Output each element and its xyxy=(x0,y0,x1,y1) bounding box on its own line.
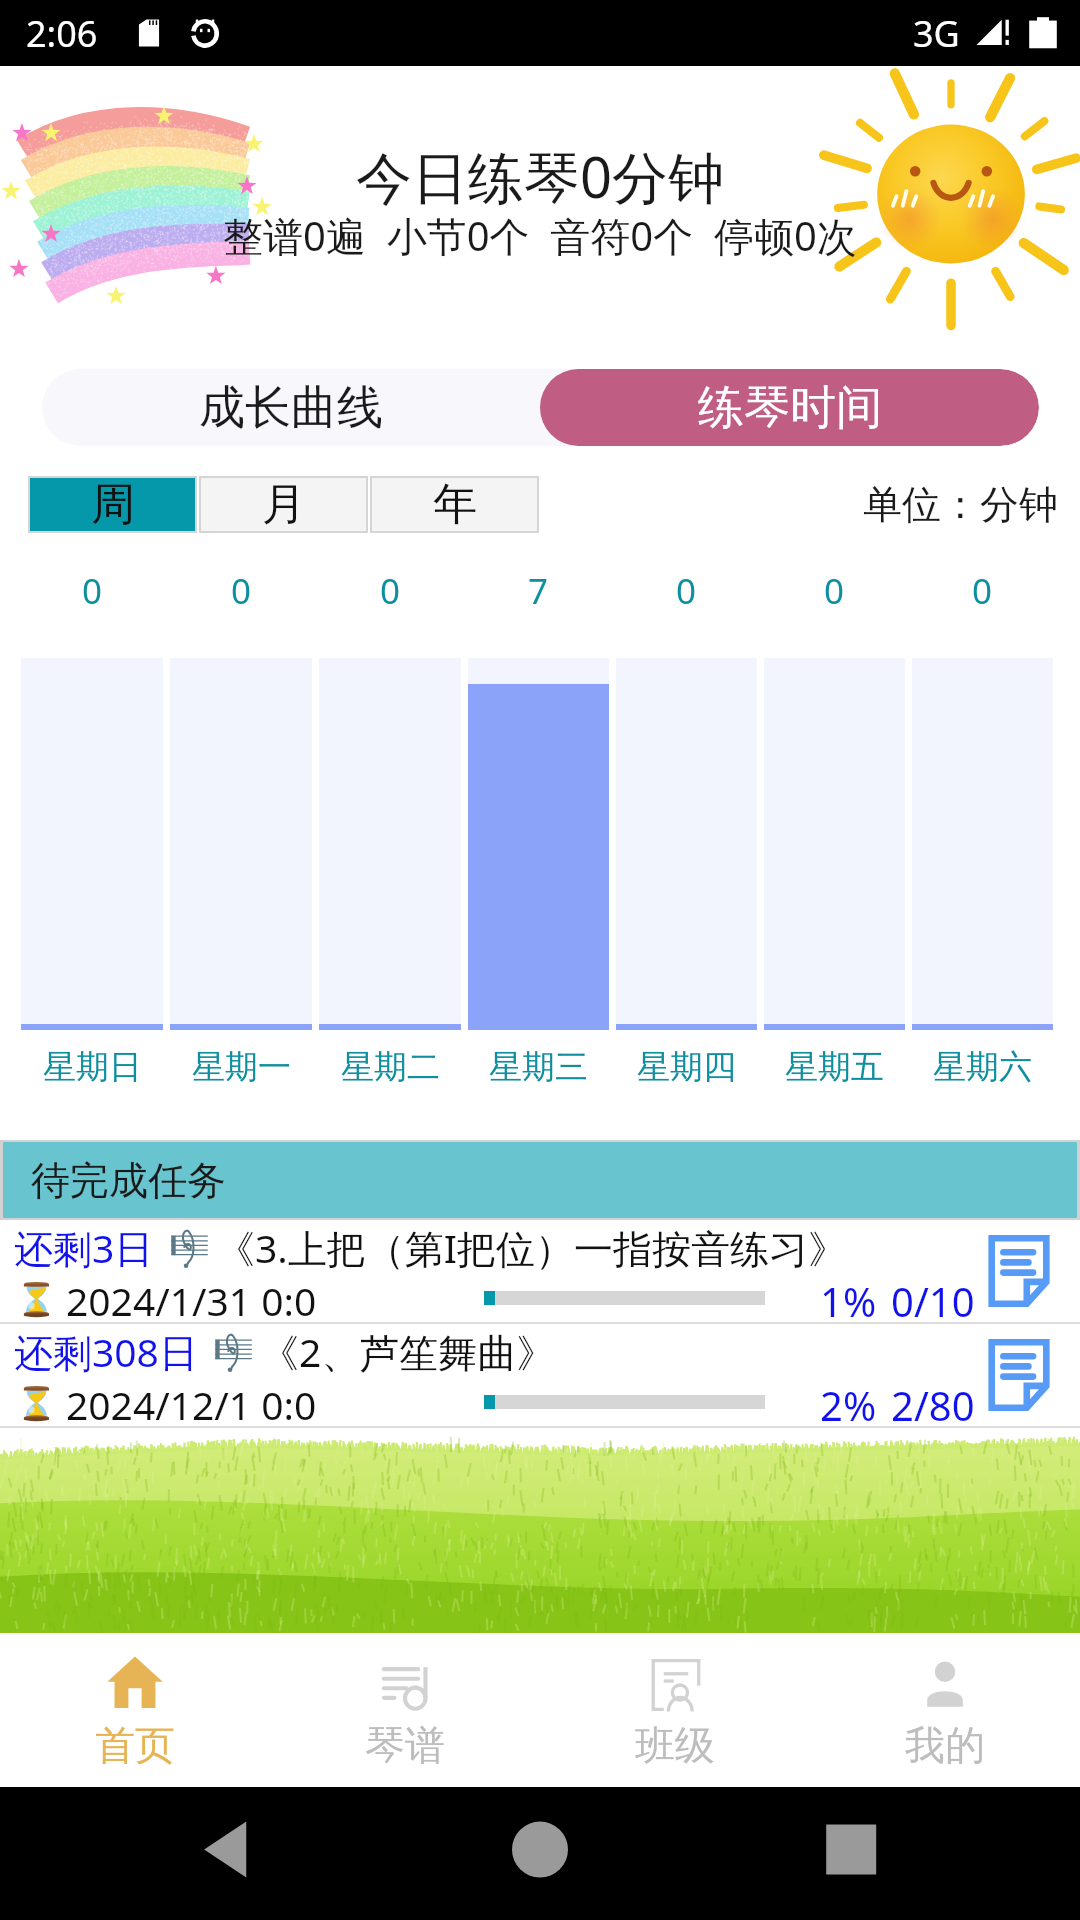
staticText: 0 xyxy=(824,567,845,615)
staticText: 2024/12/1 0:0 xyxy=(66,1378,317,1426)
button[interactable]: 练琴时间 xyxy=(540,369,1039,446)
staticText: 星期三 xyxy=(489,1046,588,1088)
staticText: 月 xyxy=(262,477,306,532)
staticText: 首页 xyxy=(95,1720,175,1770)
staticText: 0/10 xyxy=(891,1274,975,1322)
staticText: 年 xyxy=(433,477,477,532)
button[interactable]: 班级 xyxy=(540,1633,810,1787)
staticText: 2:06 xyxy=(26,9,98,58)
button[interactable]: 月 xyxy=(199,476,368,533)
button[interactable]: 还剩3日 xyxy=(0,1220,1080,1322)
button[interactable]: 琴谱 xyxy=(270,1633,540,1787)
staticText: 0 xyxy=(380,567,401,615)
staticText: 7 xyxy=(528,567,549,615)
staticText: 成长曲线 xyxy=(199,379,383,437)
staticText: 练琴时间 xyxy=(698,379,882,437)
button[interactable]: 周 xyxy=(28,476,197,533)
staticText: 星期日 xyxy=(43,1046,142,1088)
other: Open task details xyxy=(980,1232,1058,1310)
staticText: 《2、芦笙舞曲》 xyxy=(260,1325,556,1378)
staticText: 待完成任务 xyxy=(31,1156,226,1205)
staticText: 星期六 xyxy=(933,1046,1032,1088)
staticText: 1% xyxy=(820,1274,877,1322)
staticText: 还剩3日 xyxy=(14,1221,154,1274)
button[interactable]: 首页 xyxy=(0,1633,270,1787)
button[interactable]: 成长曲线 xyxy=(42,369,540,446)
staticText: 2024/1/31 0:0 xyxy=(66,1274,317,1322)
staticText: 琴谱 xyxy=(365,1720,445,1770)
staticText: 班级 xyxy=(635,1720,715,1770)
staticText: 2/80 xyxy=(891,1378,975,1426)
staticText: 星期五 xyxy=(785,1046,884,1088)
staticText: 周 xyxy=(91,477,135,532)
button[interactable]: 年 xyxy=(370,476,539,533)
staticText: 单位：分钟 xyxy=(863,480,1058,529)
staticText: 《3.上把（第I把位）一指按音练习》 xyxy=(216,1221,847,1274)
staticText: 今日练琴0分钟 xyxy=(356,138,725,214)
staticText: 我的 xyxy=(905,1720,985,1770)
button[interactable]: 我的 xyxy=(810,1633,1080,1787)
staticText: 整谱0遍 小节0个 音符0个 停顿0次 xyxy=(223,208,857,263)
staticText: 星期四 xyxy=(637,1046,736,1088)
other: Open task details xyxy=(980,1336,1058,1414)
staticText: 星期一 xyxy=(192,1046,291,1088)
staticText: 0 xyxy=(231,567,252,615)
staticText: 2% xyxy=(820,1378,877,1426)
button[interactable]: 还剩308日 xyxy=(0,1324,1080,1426)
staticText: 星期二 xyxy=(341,1046,440,1088)
staticText: 3G xyxy=(913,9,960,58)
staticText: 0 xyxy=(82,567,103,615)
staticText: 0 xyxy=(972,567,993,615)
staticText: 还剩308日 xyxy=(14,1325,198,1378)
staticText: 0 xyxy=(676,567,697,615)
